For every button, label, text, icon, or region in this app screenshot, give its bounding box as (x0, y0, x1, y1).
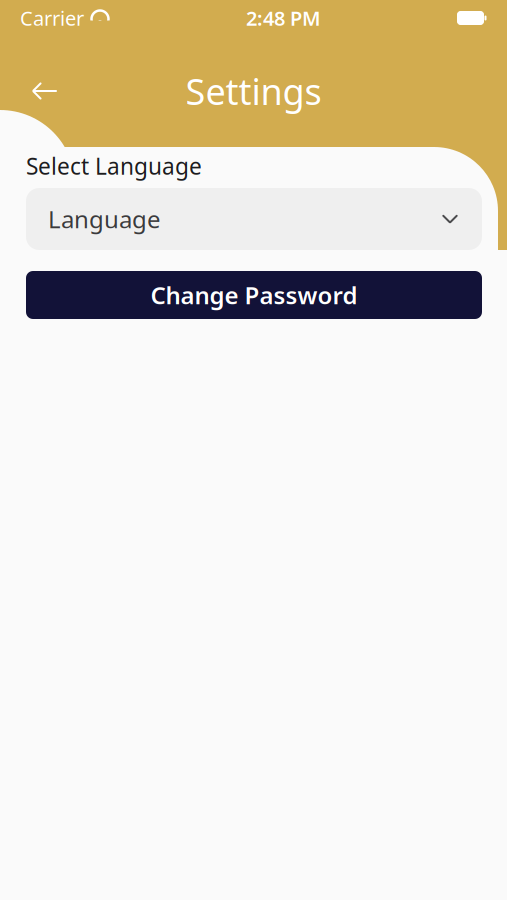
staticText: 2:48 PM (246, 5, 321, 31)
button[interactable]: Back (18, 67, 72, 115)
staticText: Language (48, 203, 161, 235)
button[interactable]: Change Password (26, 271, 482, 319)
staticText: Carrier (20, 5, 84, 31)
staticText: Settings (185, 67, 321, 115)
staticText: Select Language (26, 151, 202, 181)
button[interactable]: Language (26, 188, 482, 250)
staticText: Change Password (150, 279, 357, 311)
